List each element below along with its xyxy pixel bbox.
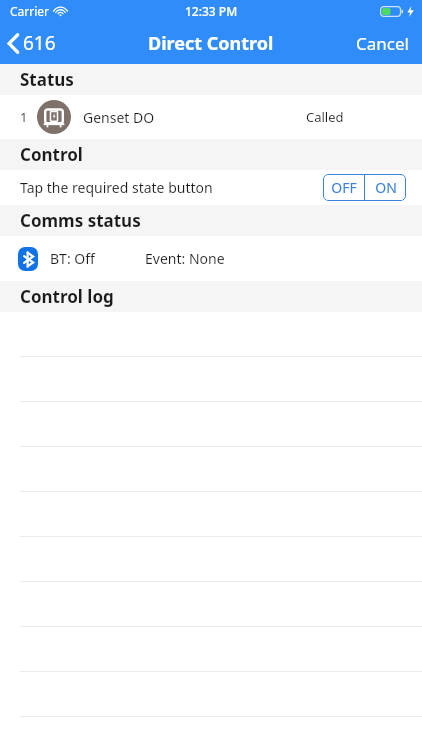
staticText: Control bbox=[20, 143, 83, 166]
staticText: 1 bbox=[20, 108, 28, 126]
staticText: Status bbox=[20, 68, 74, 91]
staticText: 616 bbox=[23, 30, 56, 56]
button[interactable]: OFF bbox=[323, 174, 364, 201]
staticText: Tap the required state button bbox=[20, 178, 213, 197]
staticText: Genset DO bbox=[83, 108, 155, 127]
staticText: OFF bbox=[331, 178, 357, 197]
staticText: Direct Control bbox=[148, 31, 274, 56]
staticText: Carrier bbox=[10, 3, 50, 19]
other: Bluetooth status bbox=[18, 247, 38, 271]
staticText: Comms status bbox=[20, 209, 141, 232]
staticText: Cancel bbox=[356, 32, 409, 55]
button[interactable]: 616 bbox=[0, 26, 66, 60]
staticText: BT: Off bbox=[50, 249, 95, 268]
staticText: ON bbox=[375, 178, 397, 197]
button[interactable]: ON bbox=[365, 174, 406, 201]
button[interactable]: 1 bbox=[0, 95, 422, 139]
button[interactable]: Cancel bbox=[343, 26, 422, 61]
staticText: Event: None bbox=[145, 249, 225, 268]
staticText: Control log bbox=[20, 285, 114, 308]
staticText: 12:33 PM bbox=[185, 3, 238, 19]
staticText: Called bbox=[306, 108, 344, 126]
